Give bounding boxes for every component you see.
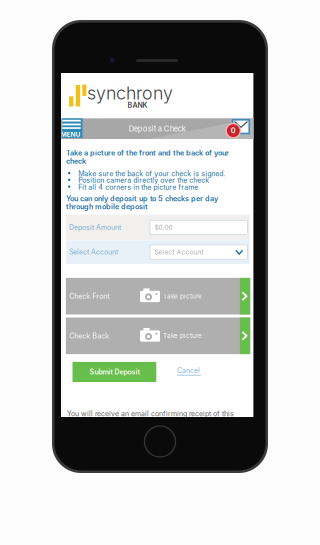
staticText: Deposit Amount [69, 223, 121, 232]
button[interactable]: Check Back [66, 317, 250, 354]
staticText: Take picture [163, 292, 202, 300]
staticText: Fit all 4 corners in the picture frame [78, 183, 198, 191]
staticText: $0.00 [154, 223, 172, 231]
button[interactable]: Check Front [66, 278, 250, 314]
staticText: check [66, 157, 86, 166]
button[interactable]: Cancel [177, 366, 203, 376]
staticText: Cancel [177, 366, 200, 375]
staticText: Position camera directly over the check [78, 176, 209, 184]
staticText: Select Account [69, 248, 118, 256]
button[interactable]: Select Account [150, 245, 247, 259]
staticText: Take a picture of the front and the back… [66, 148, 229, 157]
staticText: Check Front [69, 292, 109, 300]
staticText: Select Account [154, 248, 203, 256]
staticText: You will receive an email confirming rec… [67, 410, 234, 418]
button[interactable]: Messages [224, 119, 250, 138]
staticText: synchrony [87, 82, 173, 104]
staticText: BANK [127, 101, 147, 109]
staticText: Deposit a Check [129, 124, 186, 133]
staticText: through mobile deposit [66, 202, 148, 211]
staticText: Make sure the back of your check is sign… [78, 169, 225, 178]
staticText: MENU [61, 130, 81, 138]
staticText: You can only deposit up to 5 checks per … [66, 194, 218, 203]
staticText: Check Back [69, 331, 109, 340]
staticText: Take picture [163, 332, 202, 340]
button[interactable]: $0.00 [150, 220, 247, 235]
button[interactable]: Submit Deposit [72, 362, 156, 382]
button[interactable]: Menu [62, 118, 85, 138]
staticText: 0 [231, 126, 236, 135]
staticText: Submit Deposit [89, 368, 139, 376]
